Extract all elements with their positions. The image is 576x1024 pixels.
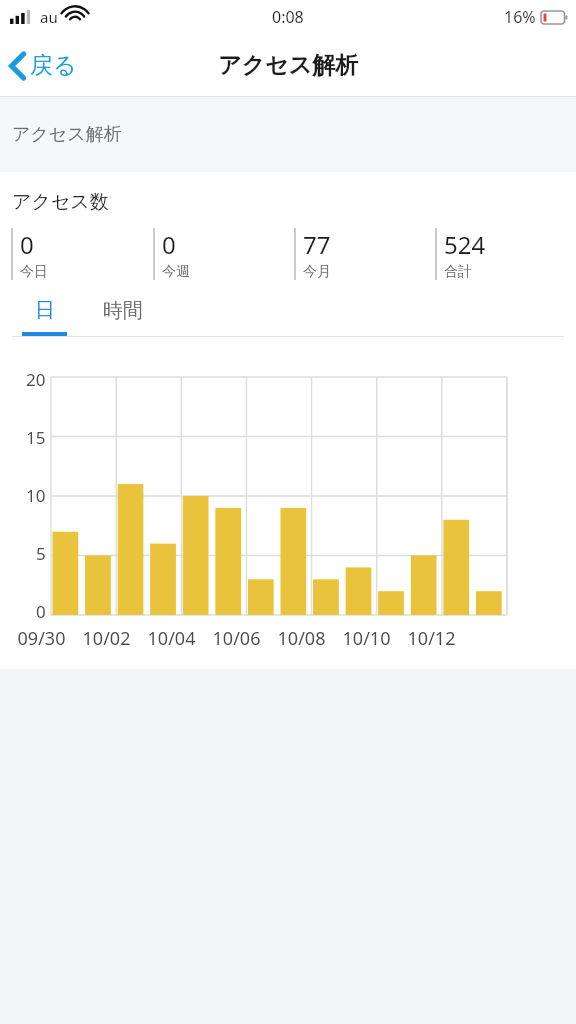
button[interactable]: 時間: [103, 298, 143, 323]
staticText: 10: [26, 484, 46, 507]
staticText: 09/30: [9, 626, 74, 651]
staticText: 15: [26, 426, 46, 449]
staticText: 10/06: [204, 626, 269, 651]
staticText: 16%: [504, 6, 536, 28]
staticText: アクセス数: [12, 190, 109, 214]
staticText: 今日: [20, 263, 48, 280]
staticText: 77: [303, 228, 331, 261]
staticText: 524: [444, 228, 486, 261]
staticText: アクセス解析: [12, 123, 122, 146]
staticText: 時間: [103, 298, 143, 323]
staticText: 0: [20, 228, 34, 261]
button[interactable]: 戻る: [0, 43, 91, 88]
staticText: 10/10: [334, 626, 399, 651]
staticText: 戻る: [30, 51, 77, 80]
staticText: 10/08: [269, 626, 334, 651]
staticText: 今週: [162, 263, 190, 280]
staticText: 5: [36, 542, 46, 565]
staticText: 0:08: [272, 6, 304, 28]
staticText: au: [40, 7, 58, 27]
button[interactable]: 日: [22, 298, 67, 336]
staticText: 10/04: [139, 626, 204, 651]
staticText: 20: [26, 368, 46, 391]
staticText: 10/02: [74, 626, 139, 651]
staticText: 日: [35, 298, 55, 323]
staticText: 今月: [303, 263, 331, 280]
staticText: アクセス解析: [218, 51, 359, 80]
staticText: 0: [162, 228, 176, 261]
staticText: 合計: [444, 263, 472, 280]
staticText: 10/12: [399, 626, 464, 651]
staticText: 0: [36, 600, 46, 623]
